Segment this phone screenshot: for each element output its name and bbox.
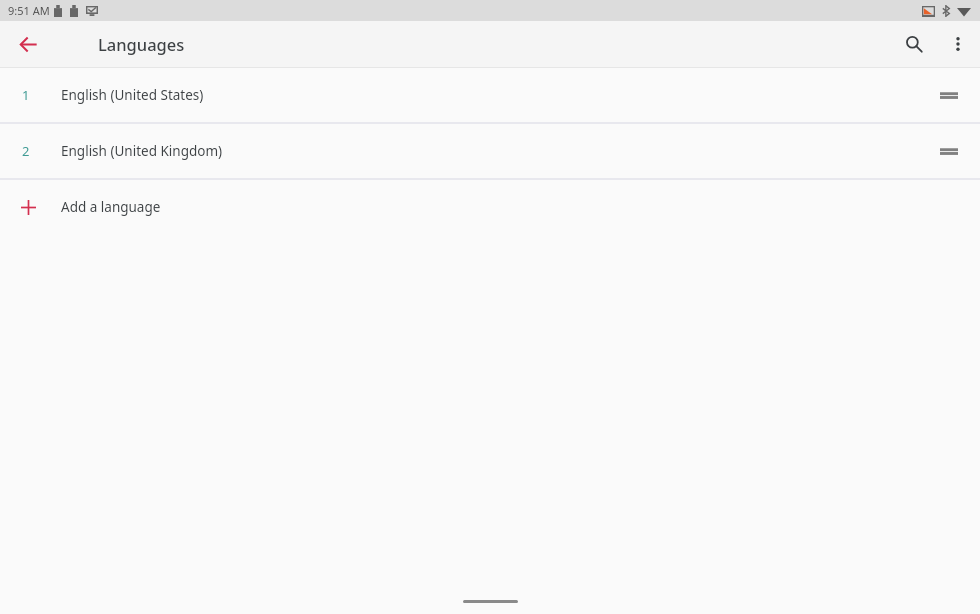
staticText: English (United States) bbox=[61, 86, 204, 104]
button[interactable]: Add a language bbox=[0, 180, 980, 234]
button[interactable]: Search bbox=[892, 22, 936, 66]
staticText: 9:51 AM bbox=[8, 3, 50, 18]
button[interactable]: More options bbox=[936, 22, 980, 66]
button[interactable]: Back bbox=[6, 22, 50, 66]
staticText: Add a language bbox=[61, 198, 161, 216]
button[interactable]: 1 bbox=[0, 68, 980, 122]
staticText: 1 bbox=[22, 86, 34, 104]
staticText: 2 bbox=[22, 142, 34, 160]
button[interactable]: Reorder bbox=[934, 136, 964, 166]
staticText: English (United Kingdom) bbox=[61, 142, 223, 160]
staticText: Languages bbox=[98, 33, 185, 55]
button[interactable]: 2 bbox=[0, 124, 980, 178]
button[interactable]: Reorder bbox=[934, 80, 964, 110]
